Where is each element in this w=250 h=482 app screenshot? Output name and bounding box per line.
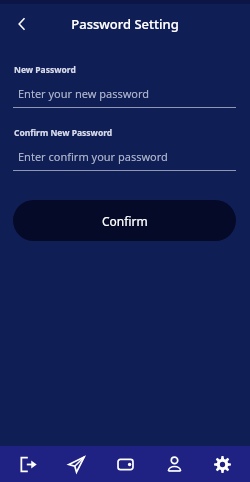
button[interactable]: Settings: [201, 446, 243, 482]
button[interactable]: New Password: [0, 64, 250, 108]
staticText: Enter confirm your password: [18, 149, 168, 164]
button[interactable]: Confirm New Password: [0, 127, 250, 171]
button[interactable]: Wallet: [104, 446, 146, 482]
staticText: Confirm: [102, 213, 148, 229]
staticText: Password Setting: [71, 15, 179, 33]
staticText: New Password: [14, 64, 76, 76]
button[interactable]: Profile: [153, 446, 195, 482]
button[interactable]: Send: [55, 446, 97, 482]
button[interactable]: Confirm: [13, 200, 236, 241]
staticText: Enter your new password: [18, 86, 150, 101]
staticText: Confirm New Password: [14, 127, 113, 139]
button[interactable]: Logout: [7, 446, 49, 482]
button[interactable]: Back: [6, 8, 38, 40]
